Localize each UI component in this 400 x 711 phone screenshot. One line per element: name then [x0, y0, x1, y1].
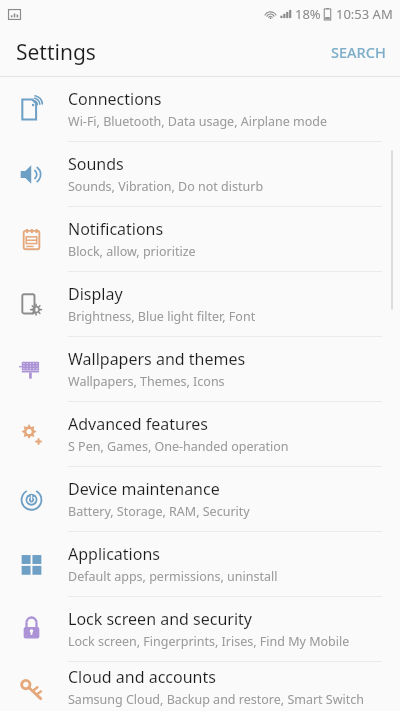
staticText: S Pen, Games, One-handed operation [68, 438, 289, 455]
staticText: Battery, Storage, RAM, Security [68, 503, 250, 520]
button[interactable]: Applications [0, 532, 400, 596]
staticText: Lock screen and security [68, 608, 252, 630]
button[interactable]: Display [0, 272, 400, 336]
staticText: Samsung Cloud, Backup and restore, Smart… [68, 691, 365, 708]
button[interactable]: Cloud and accounts [0, 662, 400, 711]
staticText: Advanced features [68, 413, 208, 435]
button[interactable]: SEARCH [317, 30, 400, 74]
button[interactable]: Device maintenance [0, 467, 400, 531]
staticText: Settings [16, 38, 96, 67]
staticText: 10:53 AM [336, 5, 393, 23]
staticText: Default apps, permissions, uninstall [68, 568, 278, 585]
staticText: Applications [68, 543, 160, 565]
staticText: Sounds, Vibration, Do not disturb [68, 178, 264, 195]
button[interactable]: Advanced features [0, 402, 400, 466]
staticText: Device maintenance [68, 478, 220, 500]
staticText: SEARCH [331, 42, 386, 62]
staticText: Brightness, Blue light filter, Font [68, 308, 256, 325]
staticText: Notifications [68, 218, 164, 240]
staticText: Block, allow, prioritize [68, 243, 196, 260]
button[interactable]: Notifications [0, 207, 400, 271]
staticText: Cloud and accounts [68, 666, 216, 688]
button[interactable]: Settings [0, 32, 106, 73]
staticText: Display [68, 283, 123, 305]
staticText: Sounds [68, 153, 124, 175]
staticText: Lock screen, Fingerprints, Irises, Find … [68, 633, 350, 650]
staticText: Wallpapers and themes [68, 348, 246, 370]
button[interactable]: Wallpapers and themes [0, 337, 400, 401]
staticText: Wi-Fi, Bluetooth, Data usage, Airplane m… [68, 113, 328, 130]
staticText: Connections [68, 88, 162, 110]
button[interactable]: Connections [0, 77, 400, 141]
button[interactable]: Sounds [0, 142, 400, 206]
button[interactable]: Lock screen and security [0, 597, 400, 661]
staticText: 18% [295, 5, 321, 23]
staticText: Wallpapers, Themes, Icons [68, 373, 225, 390]
